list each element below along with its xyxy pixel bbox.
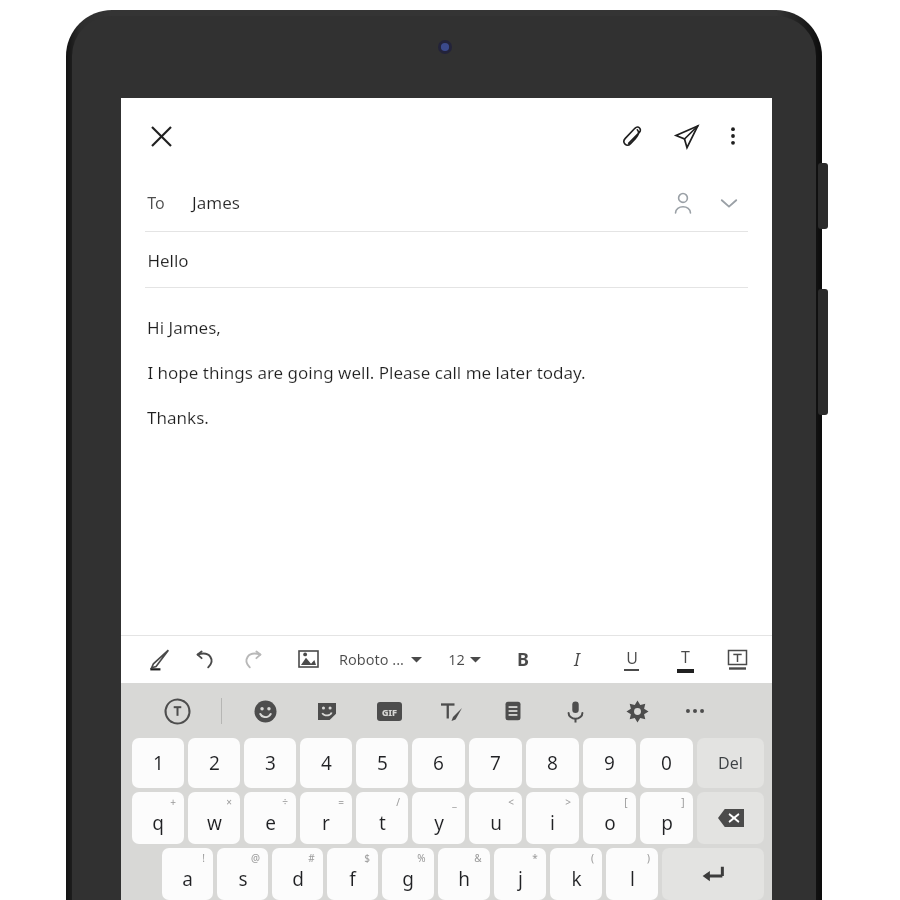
button[interactable]: / — [356, 792, 408, 844]
staticText: k — [571, 866, 582, 892]
staticText: I — [574, 647, 580, 672]
button[interactable]: Format — [137, 636, 183, 682]
staticText: / — [396, 795, 400, 809]
staticText: Del — [718, 752, 743, 774]
button[interactable]: I — [558, 640, 596, 678]
button[interactable]: # — [272, 848, 323, 900]
staticText: I hope things are going well. Please cal… — [147, 361, 586, 384]
staticText: y — [434, 810, 444, 836]
button[interactable]: Text colour — [666, 640, 704, 678]
button[interactable]: Settings — [616, 690, 658, 732]
button[interactable]: Contacts — [664, 184, 702, 222]
button[interactable]: Emoji — [244, 690, 286, 732]
button[interactable]: 12 — [448, 639, 481, 679]
button[interactable]: Redo — [229, 636, 275, 682]
button[interactable]: [ — [583, 792, 636, 844]
staticText: ! — [202, 851, 205, 865]
button[interactable]: ÷ — [244, 792, 296, 844]
button[interactable]: Text box — [718, 640, 756, 678]
staticText: j — [518, 866, 523, 892]
staticText: t — [379, 810, 386, 836]
staticText: [ — [624, 795, 628, 809]
button[interactable]: Del — [697, 738, 764, 788]
staticText: 5 — [377, 750, 388, 776]
button[interactable]: Stickers — [306, 690, 348, 732]
button[interactable]: ] — [640, 792, 693, 844]
button[interactable]: Attach file — [610, 114, 654, 158]
staticText: 3 — [265, 750, 276, 776]
button[interactable]: Roboto ... — [339, 639, 422, 679]
button[interactable]: Undo — [183, 636, 229, 682]
button[interactable]: Handwriting — [430, 690, 472, 732]
button[interactable]: ) — [606, 848, 658, 900]
button[interactable]: 7 — [469, 738, 522, 788]
button[interactable]: Enter — [662, 848, 764, 900]
staticText: B — [517, 647, 529, 672]
button[interactable]: × — [188, 792, 240, 844]
staticText: = — [338, 795, 344, 809]
button[interactable]: = — [300, 792, 352, 844]
button[interactable]: GIF — [368, 690, 410, 732]
button[interactable]: Backspace — [697, 792, 764, 844]
staticText: 0 — [661, 750, 672, 776]
button[interactable]: ! — [162, 848, 213, 900]
staticText: w — [207, 810, 222, 836]
other: Power — [818, 289, 828, 415]
button[interactable]: _ — [412, 792, 465, 844]
staticText: ÷ — [282, 795, 288, 809]
button[interactable]: More options — [714, 117, 752, 155]
staticText: T — [681, 646, 690, 668]
staticText: & — [474, 851, 482, 865]
button[interactable]: More — [674, 690, 716, 732]
button[interactable]: $ — [327, 848, 378, 900]
button[interactable]: To — [121, 173, 772, 232]
staticText: ( — [591, 851, 594, 865]
button[interactable]: Hello — [121, 232, 772, 288]
button[interactable]: & — [438, 848, 490, 900]
staticText: s — [238, 866, 248, 892]
button[interactable]: * — [494, 848, 546, 900]
button[interactable]: > — [526, 792, 579, 844]
staticText: i — [550, 810, 555, 836]
button[interactable]: Close — [139, 114, 183, 158]
staticText: U — [626, 647, 638, 669]
button[interactable]: 0 — [640, 738, 693, 788]
button[interactable]: Insert image — [285, 636, 331, 682]
staticText: p — [661, 810, 673, 836]
staticText: > — [565, 795, 571, 809]
button[interactable]: 4 — [300, 738, 352, 788]
staticText: d — [292, 866, 304, 892]
staticText: 6 — [433, 750, 444, 776]
button[interactable]: Expand recipients — [710, 184, 748, 222]
button[interactable]: Translate — [155, 689, 199, 733]
staticText: a — [182, 866, 193, 892]
button[interactable]: < — [469, 792, 522, 844]
staticText: ) — [647, 851, 650, 865]
staticText: $ — [364, 851, 370, 865]
button[interactable]: Clipboard — [492, 690, 534, 732]
button[interactable]: % — [382, 848, 434, 900]
staticText: ] — [681, 795, 685, 809]
button[interactable]: 1 — [132, 738, 184, 788]
staticText: 4 — [321, 750, 332, 776]
staticText: < — [508, 795, 514, 809]
staticText: q — [152, 810, 164, 836]
button[interactable]: + — [132, 792, 184, 844]
button[interactable]: 3 — [244, 738, 296, 788]
staticText: _ — [452, 795, 457, 809]
button[interactable]: Underline — [612, 640, 650, 678]
button[interactable]: Send — [664, 114, 708, 158]
button[interactable]: Voice input — [554, 690, 596, 732]
button[interactable]: 9 — [583, 738, 636, 788]
button[interactable]: 6 — [412, 738, 465, 788]
staticText: r — [322, 810, 330, 836]
button[interactable]: @ — [217, 848, 268, 900]
staticText: To — [147, 192, 165, 214]
button[interactable]: 2 — [188, 738, 240, 788]
button[interactable]: ( — [550, 848, 602, 900]
button[interactable]: 5 — [356, 738, 408, 788]
staticText: o — [604, 810, 616, 836]
button[interactable]: B — [504, 640, 542, 678]
button[interactable]: 8 — [526, 738, 579, 788]
staticText: @ — [251, 851, 260, 865]
